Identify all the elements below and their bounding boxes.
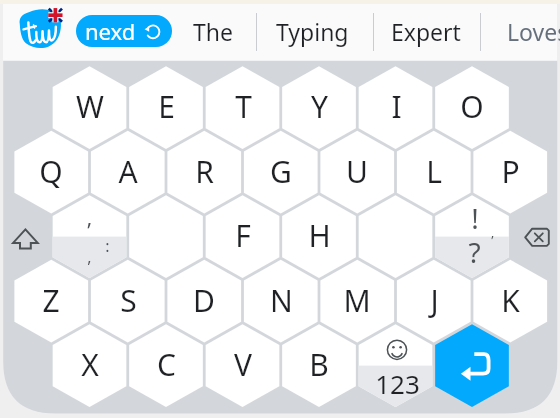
- button[interactable]: W: [53, 65, 127, 148]
- staticText: ’: [87, 217, 91, 246]
- button[interactable]: punctuation: [53, 195, 127, 278]
- button[interactable]: Loves: [483, 5, 560, 57]
- button[interactable]: Shift: [3, 205, 49, 269]
- staticText: B: [309, 344, 329, 385]
- staticText: 123: [375, 366, 420, 401]
- button[interactable]: M: [320, 259, 394, 342]
- button[interactable]: The: [158, 5, 268, 57]
- button[interactable]: L: [397, 130, 471, 213]
- button[interactable]: Q: [14, 130, 88, 213]
- button[interactable]: E: [129, 65, 203, 148]
- staticText: P: [501, 151, 520, 192]
- staticText: Z: [42, 280, 60, 321]
- staticText: C: [157, 344, 176, 385]
- button[interactable]: P: [473, 130, 547, 213]
- staticText: G: [270, 151, 292, 192]
- staticText: I: [391, 86, 402, 127]
- staticText: S: [120, 280, 137, 321]
- button[interactable]: Typing: [257, 5, 367, 57]
- staticText: A: [118, 151, 138, 192]
- staticText: H: [308, 215, 331, 256]
- staticText: ?: [468, 233, 481, 271]
- button[interactable]: Enter: [435, 324, 509, 407]
- staticText: U: [346, 151, 368, 192]
- button[interactable]: R: [167, 130, 241, 213]
- button[interactable]: numbers and emoji: [359, 324, 433, 407]
- staticText: E: [158, 86, 175, 127]
- staticText: ’: [491, 231, 494, 249]
- button[interactable]: X: [53, 323, 127, 406]
- button[interactable]: H: [282, 194, 356, 277]
- staticText: V: [234, 344, 252, 385]
- staticText: J: [430, 280, 439, 321]
- button[interactable]: nexd: [76, 15, 172, 47]
- button[interactable]: Typewise keyboard settings: [18, 8, 62, 48]
- button[interactable]: S: [91, 259, 165, 342]
- staticText: L: [426, 151, 442, 192]
- staticText: D: [193, 280, 215, 321]
- staticText: Expert: [391, 16, 461, 47]
- staticText: Y: [311, 86, 328, 127]
- button[interactable]: N: [244, 259, 318, 342]
- staticText: N: [270, 280, 293, 321]
- button[interactable]: D: [167, 259, 241, 342]
- button[interactable]: Expert: [371, 5, 481, 57]
- staticText: X: [81, 344, 99, 385]
- staticText: :: [105, 235, 110, 257]
- staticText: W: [76, 86, 104, 127]
- button[interactable]: question mark: [435, 195, 509, 278]
- staticText: O: [460, 86, 484, 127]
- staticText: The: [193, 16, 233, 47]
- button[interactable]: Backspace: [514, 205, 560, 269]
- button[interactable]: T: [206, 65, 280, 148]
- button[interactable]: U: [320, 130, 394, 213]
- staticText: Q: [39, 151, 63, 192]
- button[interactable]: O: [435, 65, 509, 148]
- staticText: ,: [87, 246, 92, 268]
- button[interactable]: B: [282, 323, 356, 406]
- button[interactable]: A: [91, 130, 165, 213]
- staticText: R: [195, 151, 214, 192]
- button[interactable]: Z: [14, 259, 88, 342]
- button[interactable]: G: [244, 130, 318, 213]
- button[interactable]: V: [206, 323, 280, 406]
- staticText: T: [235, 86, 252, 127]
- staticText: !: [471, 199, 479, 237]
- staticText: nexd: [85, 16, 136, 46]
- staticText: K: [501, 280, 520, 321]
- staticText: Typing: [276, 16, 349, 47]
- staticText: F: [235, 215, 251, 256]
- staticText: Loves: [507, 16, 560, 47]
- button[interactable]: K: [473, 259, 547, 342]
- button[interactable]: J: [397, 259, 471, 342]
- button[interactable]: C: [129, 323, 203, 406]
- button[interactable]: I: [359, 65, 433, 148]
- button[interactable]: F: [206, 194, 280, 277]
- button[interactable]: Y: [282, 65, 356, 148]
- staticText: M: [343, 280, 371, 321]
